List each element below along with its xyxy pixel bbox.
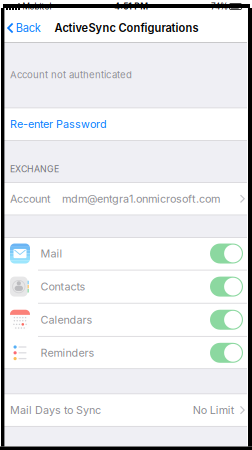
staticText: Reminders [40,346,94,359]
button[interactable]: Account [4,182,247,215]
button[interactable]: Contacts [210,277,243,297]
button[interactable]: Reminders [210,343,243,363]
staticText: EXCHANGE [10,164,59,174]
staticText: Contacts [40,280,85,293]
button[interactable]: Calendars [210,310,243,330]
staticText: Account not authenticated [10,69,132,81]
staticText: Mail Days to Sync [10,403,101,417]
button[interactable]: Mail Days to Sync [4,394,247,427]
staticText: Re-enter Password [10,118,107,131]
staticText: No Limit [193,403,235,417]
staticText: ActiveSync Configurations [54,21,198,35]
staticText: Calendars [40,313,92,326]
staticText: mdm@entgra1.onmicrosoft.com [62,192,220,205]
staticText: Mail [40,247,62,260]
staticText: Mobitel [22,1,51,11]
staticText: Account [10,192,51,205]
button[interactable]: Mail [210,243,243,263]
staticText: Back [16,21,41,35]
staticText: 4:51 PM [114,1,148,12]
button[interactable]: Back [4,13,47,43]
button[interactable]: Re-enter Password [4,108,247,141]
staticText: 74% [211,1,228,11]
